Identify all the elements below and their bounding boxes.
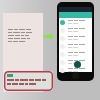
button[interactable]: [59, 42, 92, 50]
button[interactable]: [59, 18, 92, 26]
button[interactable]: New chat: [74, 61, 81, 68]
button[interactable]: [59, 66, 92, 74]
button[interactable]: [59, 58, 92, 66]
button[interactable]: [59, 34, 92, 42]
button[interactable]: [59, 50, 92, 58]
button[interactable]: [59, 26, 92, 34]
button[interactable]: [4, 71, 53, 91]
button[interactable]: Home: [72, 72, 79, 79]
